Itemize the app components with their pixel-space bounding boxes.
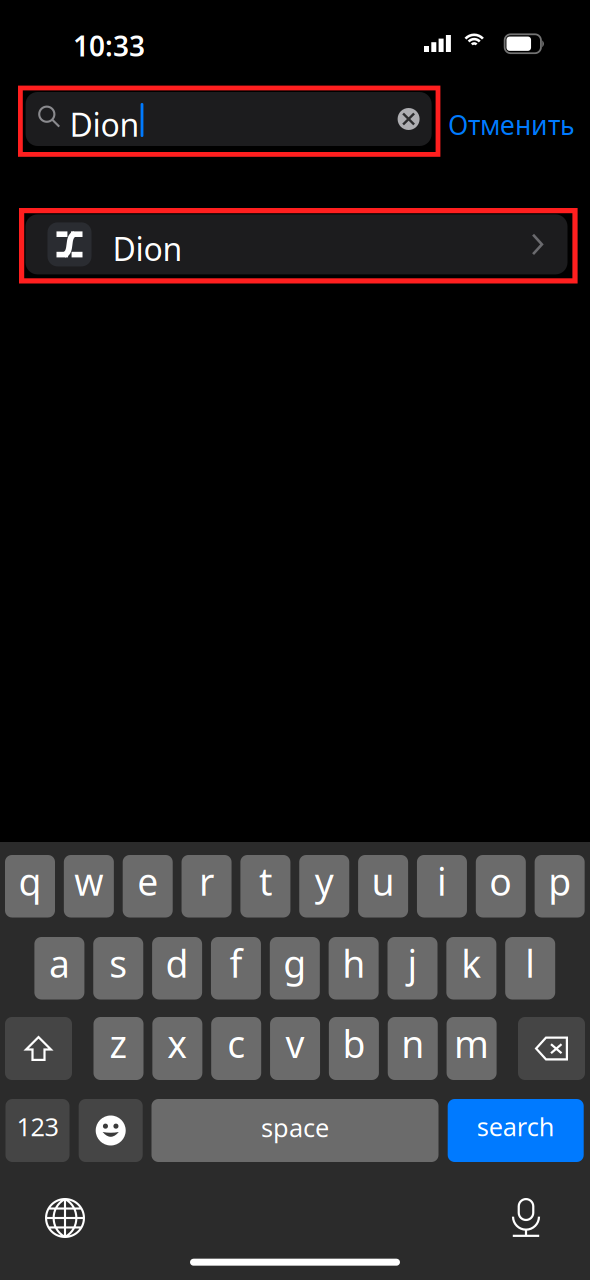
staticText: l (525, 938, 535, 988)
button[interactable]: q (5, 855, 55, 917)
staticText: p (548, 856, 571, 906)
button[interactable]: n (388, 1017, 438, 1080)
staticText: h (342, 938, 365, 988)
staticText: t (259, 856, 272, 906)
button[interactable]: r (182, 855, 232, 917)
button[interactable]: Delete (518, 1017, 585, 1080)
staticText: Отменить (448, 107, 575, 142)
button[interactable]: 123 (5, 1099, 69, 1162)
button[interactable]: j (387, 937, 437, 999)
staticText: d (166, 938, 189, 988)
staticText: y (315, 856, 334, 906)
staticText: r (199, 856, 214, 906)
staticText: 10:33 (73, 27, 145, 64)
button[interactable]: Shift (5, 1017, 72, 1080)
staticText: f (229, 938, 242, 988)
staticText: space (261, 1111, 329, 1144)
button[interactable]: Emoji (79, 1099, 143, 1162)
staticText: i (437, 856, 447, 906)
button[interactable]: space (151, 1099, 438, 1162)
staticText: x (167, 1019, 187, 1068)
button[interactable]: Dictate (504, 1196, 548, 1240)
staticText: u (372, 856, 395, 906)
button[interactable]: s (93, 937, 143, 999)
button[interactable]: h (329, 937, 379, 999)
staticText: v (286, 1019, 305, 1068)
staticText: j (407, 938, 417, 988)
button[interactable]: a (34, 937, 84, 999)
staticText: c (227, 1019, 245, 1068)
button[interactable]: Dion (25, 214, 567, 274)
staticText: w (74, 856, 103, 906)
button[interactable]: l (505, 937, 555, 999)
button[interactable]: Switch keyboard (45, 1198, 85, 1238)
staticText: search (477, 1110, 555, 1143)
button[interactable]: z (93, 1017, 143, 1080)
staticText: z (109, 1019, 127, 1068)
staticText: s (109, 938, 127, 988)
staticText: a (49, 938, 70, 988)
staticText: m (454, 1019, 489, 1068)
button[interactable]: i (417, 855, 467, 917)
button[interactable]: search (448, 1099, 584, 1162)
button[interactable]: d (152, 937, 202, 999)
button[interactable]: b (329, 1017, 379, 1080)
staticText: n (401, 1019, 424, 1068)
button[interactable]: u (358, 855, 408, 917)
staticText: k (461, 938, 481, 988)
staticText: o (489, 856, 512, 906)
button[interactable]: o (476, 855, 526, 917)
button[interactable]: m (447, 1017, 497, 1080)
button[interactable]: Отменить (448, 107, 590, 141)
staticText: q (18, 856, 41, 906)
button[interactable]: k (446, 937, 496, 999)
staticText: e (137, 856, 158, 906)
button[interactable]: w (64, 855, 114, 917)
button[interactable]: p (535, 855, 585, 917)
staticText: 123 (16, 1110, 58, 1143)
button[interactable]: f (211, 937, 261, 999)
button[interactable]: c (211, 1017, 261, 1080)
button[interactable]: e (123, 855, 173, 917)
button[interactable]: v (270, 1017, 320, 1080)
button[interactable]: t (240, 855, 290, 917)
staticText: Dion (70, 103, 140, 145)
button[interactable]: Dion (26, 92, 432, 146)
button[interactable]: y (299, 855, 349, 917)
button[interactable]: x (152, 1017, 202, 1080)
button[interactable]: g (270, 937, 320, 999)
staticText: Dion (112, 227, 182, 270)
staticText: g (283, 938, 306, 988)
staticText: b (342, 1019, 365, 1068)
